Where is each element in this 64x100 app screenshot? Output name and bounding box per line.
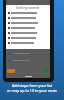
staticText: or map up to 10 to your route — [0, 88, 64, 93]
button[interactable]: Primary action — [7, 69, 15, 73]
button[interactable] — [6, 30, 50, 35]
button[interactable] — [6, 57, 50, 64]
button[interactable]: Confirm — [44, 68, 48, 73]
button[interactable] — [6, 35, 50, 40]
button[interactable] — [6, 40, 50, 45]
button[interactable] — [6, 20, 50, 25]
button[interactable] — [6, 50, 50, 57]
button[interactable] — [6, 10, 50, 15]
staticText: Getting started — [16, 6, 40, 10]
staticText: Add steps from your list — [0, 83, 64, 88]
button[interactable] — [6, 25, 50, 30]
button[interactable] — [6, 15, 50, 20]
